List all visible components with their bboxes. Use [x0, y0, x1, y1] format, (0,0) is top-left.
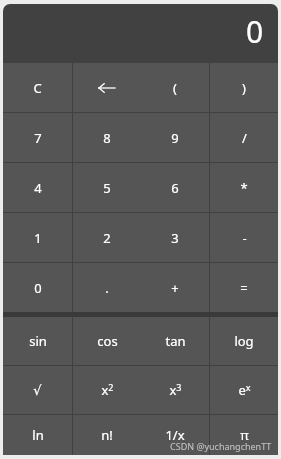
- staticText: 1/x: [165, 426, 185, 444]
- staticText: +: [171, 279, 179, 297]
- button[interactable]: cos: [73, 317, 141, 365]
- staticText: x2: [101, 381, 114, 399]
- button[interactable]: 5: [73, 163, 141, 212]
- staticText: ln: [32, 426, 44, 444]
- button[interactable]: 0: [3, 4, 278, 63]
- staticText: -: [242, 229, 247, 247]
- staticText: cos: [97, 332, 118, 350]
- staticText: C: [33, 79, 42, 97]
- button[interactable]: *: [210, 163, 278, 212]
- staticText: n!: [101, 426, 113, 444]
- staticText: π: [240, 426, 249, 444]
- staticText: x3: [169, 381, 182, 399]
- button[interactable]: 2: [73, 213, 141, 262]
- button[interactable]: π: [210, 415, 278, 455]
- staticText: 7: [34, 129, 42, 147]
- staticText: 1: [34, 229, 42, 247]
- staticText: ): [242, 79, 246, 97]
- button[interactable]: x2: [73, 366, 141, 414]
- button[interactable]: n!: [73, 415, 141, 455]
- button[interactable]: 1/x: [141, 415, 209, 455]
- staticText: *: [240, 179, 248, 197]
- button[interactable]: 7: [3, 113, 72, 162]
- staticText: =: [240, 279, 248, 297]
- staticText: /: [242, 129, 247, 147]
- staticText: 0: [246, 11, 264, 52]
- staticText: tan: [165, 332, 186, 350]
- button[interactable]: =: [210, 263, 278, 312]
- button[interactable]: 3: [141, 213, 209, 262]
- button[interactable]: tan: [141, 317, 209, 365]
- staticText: 6: [171, 179, 179, 197]
- button[interactable]: log: [210, 317, 278, 365]
- button[interactable]: Backspace: [73, 63, 141, 112]
- button[interactable]: (: [141, 63, 209, 112]
- staticText: √: [33, 383, 42, 398]
- button[interactable]: sin: [3, 317, 72, 365]
- staticText: 8: [103, 129, 111, 147]
- button[interactable]: +: [141, 263, 209, 312]
- staticText: CSDN @yuchangchenTT: [170, 440, 272, 452]
- button[interactable]: √: [3, 366, 72, 414]
- staticText: 5: [103, 179, 111, 197]
- staticText: sin: [29, 332, 47, 350]
- button[interactable]: -: [210, 213, 278, 262]
- staticText: 2: [103, 229, 111, 247]
- button[interactable]: 1: [3, 213, 72, 262]
- button[interactable]: .: [73, 263, 141, 312]
- staticText: log: [234, 332, 254, 350]
- button[interactable]: /: [210, 113, 278, 162]
- button[interactable]: x3: [141, 366, 209, 414]
- staticText: 3: [171, 229, 179, 247]
- button[interactable]: C: [3, 63, 72, 112]
- staticText: .: [105, 279, 109, 297]
- staticText: 0: [34, 279, 42, 297]
- button[interactable]: 0: [3, 263, 72, 312]
- button[interactable]: ln: [3, 415, 72, 455]
- button[interactable]: ex: [210, 366, 278, 414]
- staticText: 4: [34, 179, 42, 197]
- button[interactable]: 6: [141, 163, 209, 212]
- button[interactable]: 9: [141, 113, 209, 162]
- button[interactable]: 8: [73, 113, 141, 162]
- button[interactable]: ): [210, 63, 278, 112]
- staticText: (: [173, 79, 177, 97]
- button[interactable]: 4: [3, 163, 72, 212]
- staticText: ex: [238, 381, 251, 399]
- staticText: 9: [171, 129, 179, 147]
